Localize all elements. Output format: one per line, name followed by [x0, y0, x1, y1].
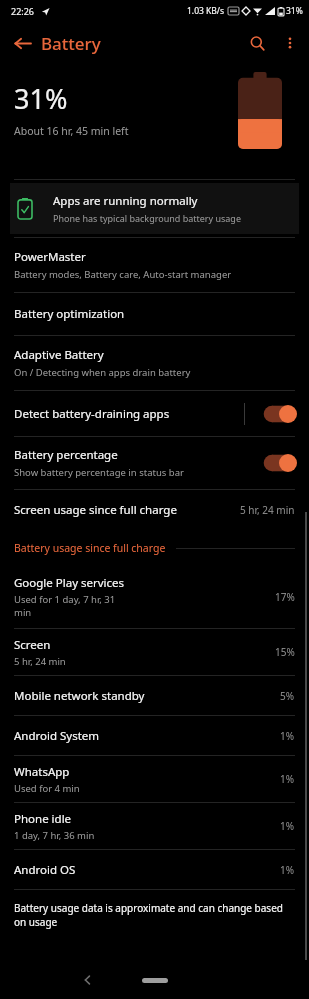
staticText: On / Detecting when apps drain battery	[14, 366, 191, 379]
staticText: Used for 4 min	[14, 782, 80, 795]
button[interactable]: Adaptive Battery	[0, 336, 309, 390]
staticText: Detect battery-draining apps	[14, 406, 170, 422]
button[interactable]: Detect battery-draining apps	[0, 391, 309, 436]
staticText: 1%	[280, 863, 295, 877]
staticText: Phone has typical background battery usa…	[53, 212, 241, 224]
button[interactable]: Apps are running normally	[10, 183, 299, 234]
button[interactable]: Battery optimization	[0, 293, 309, 335]
staticText: WhatsApp	[14, 764, 70, 780]
staticText: 1%	[280, 819, 295, 833]
staticText: 5 hr, 24 min	[14, 655, 66, 668]
staticText: 31%	[14, 80, 68, 117]
button[interactable]: Battery percentage	[0, 437, 309, 489]
button[interactable]: Android OS	[0, 850, 309, 889]
staticText: 15%	[275, 645, 295, 659]
staticText: Google Play services	[14, 575, 125, 591]
staticText: Mobile network standby	[14, 688, 145, 704]
button[interactable]: Home	[142, 978, 168, 983]
staticText: Apps are running normally	[53, 193, 198, 209]
button[interactable]: More options	[275, 28, 305, 58]
button[interactable]: Android System	[0, 716, 309, 755]
staticText: Android System	[14, 728, 100, 744]
button[interactable]: Back	[6, 27, 38, 59]
button[interactable]: Mobile network standby	[0, 676, 309, 715]
staticText: 1%	[280, 772, 295, 786]
other: Detect battery-draining apps toggle	[263, 405, 297, 423]
staticText: 5%	[280, 689, 295, 703]
staticText: Phone idle	[14, 811, 72, 827]
staticText: Battery usage since full charge	[14, 541, 166, 555]
staticText: Screen	[14, 637, 51, 653]
button[interactable]: WhatsApp	[0, 756, 309, 802]
staticText: 22:26	[11, 5, 35, 17]
button[interactable]: Back	[74, 966, 102, 994]
button[interactable]: Phone idle	[0, 803, 309, 849]
button[interactable]: Search	[241, 27, 273, 59]
staticText: Battery modes, Battery care, Auto-start …	[14, 268, 232, 281]
button[interactable]: Google Play services	[0, 566, 309, 628]
staticText: Battery	[41, 32, 101, 55]
staticText: Show battery percentage in status bar	[14, 466, 184, 479]
staticText: Screen usage since full charge	[14, 502, 177, 518]
other: Battery percentage toggle	[263, 454, 297, 472]
button[interactable]: Screen	[0, 629, 309, 675]
staticText: Android OS	[14, 862, 76, 878]
staticText: 5 hr, 24 min	[240, 503, 295, 517]
staticText: 1.03 KB/s	[187, 5, 225, 17]
button[interactable]: Screen usage since full charge	[0, 490, 309, 530]
staticText: Used for 1 day, 7 hr, 31 min	[14, 593, 116, 619]
staticText: About 16 hr, 45 min left	[14, 124, 129, 138]
staticText: PowerMaster	[14, 249, 86, 265]
staticText: 31%	[286, 5, 303, 17]
staticText: Battery usage data is approximate and ca…	[14, 901, 293, 929]
staticText: 1 day, 7 hr, 36 min	[14, 829, 95, 842]
staticText: 1%	[280, 729, 295, 743]
staticText: Battery optimization	[14, 306, 125, 322]
button[interactable]: PowerMaster	[0, 238, 309, 292]
staticText: Adaptive Battery	[14, 347, 104, 363]
staticText: Battery percentage	[14, 447, 118, 463]
staticText: 17%	[275, 590, 295, 604]
